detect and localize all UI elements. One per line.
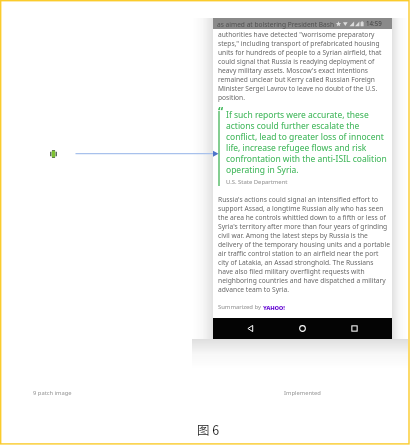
staticText: 14:59 xyxy=(366,20,382,28)
staticText: 图 6 xyxy=(197,422,220,438)
staticText: “ xyxy=(218,104,224,119)
staticText: Implemented xyxy=(284,389,321,396)
staticText: 9 patch image xyxy=(33,389,72,396)
button[interactable]: 9 patch image xyxy=(50,150,57,158)
staticText: U.S. State Department xyxy=(226,178,288,186)
staticText: Summarized by xyxy=(218,303,263,311)
staticText: authorities have detected "worrisome pre… xyxy=(218,30,382,102)
button[interactable]: Home xyxy=(297,323,308,334)
staticText: If such reports were accurate, these act… xyxy=(226,109,387,175)
staticText: as aimed at bolstering President Bash xyxy=(217,20,335,28)
button[interactable]: Back xyxy=(245,323,256,334)
button[interactable]: Recent apps xyxy=(349,323,360,334)
staticText: Russia's actions could signal an intensi… xyxy=(218,195,390,294)
staticText: YAHOO! xyxy=(263,304,285,311)
